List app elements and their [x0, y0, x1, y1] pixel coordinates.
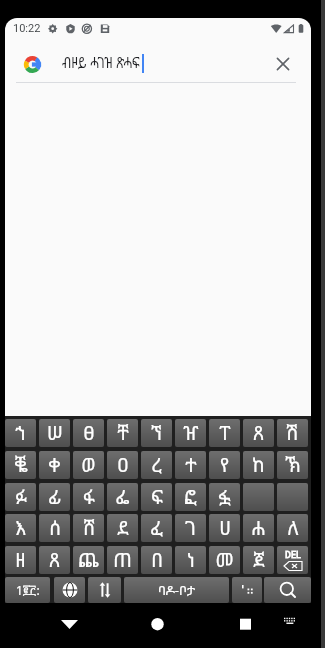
- staticText: ፌ: [115, 484, 130, 510]
- staticText: ፀ: [83, 420, 95, 446]
- button[interactable]: ጀ: [243, 546, 274, 574]
- button[interactable]: ኀ: [5, 419, 36, 447]
- staticText: ደ: [117, 515, 129, 541]
- staticText: ፈ: [150, 515, 163, 541]
- button[interactable]: ሰ: [39, 514, 70, 542]
- button[interactable]: ዘ: [5, 546, 36, 574]
- button[interactable]: ተ: [175, 451, 206, 479]
- staticText: ፍ: [151, 484, 163, 510]
- button[interactable]: ፀ: [73, 419, 104, 447]
- staticText: ቀ: [48, 452, 61, 478]
- button[interactable]: [54, 577, 85, 603]
- staticText: ፊ: [48, 484, 61, 510]
- staticText: ሽ: [286, 420, 299, 446]
- staticText: የ: [220, 452, 229, 478]
- button[interactable]: በ: [141, 546, 172, 574]
- button[interactable]: Home: [141, 608, 174, 638]
- staticText: ሐ: [251, 515, 266, 541]
- staticText: ቸ: [117, 420, 129, 446]
- staticText: ፏ: [218, 484, 231, 510]
- button[interactable]: ሐ: [243, 514, 274, 542]
- button[interactable]: [232, 577, 262, 603]
- button[interactable]: ረ: [141, 451, 172, 479]
- button[interactable]: ሀ: [209, 514, 240, 542]
- staticText: ሸ: [83, 515, 95, 541]
- button[interactable]: ቘ: [5, 451, 36, 479]
- staticText: 10:22: [13, 22, 41, 35]
- button[interactable]: ጸ: [243, 419, 274, 447]
- button[interactable]: ቀ: [39, 451, 70, 479]
- button[interactable]: ፌ: [107, 483, 138, 511]
- button[interactable]: እ: [5, 514, 36, 542]
- staticText: ሠ: [47, 420, 63, 446]
- staticText: ጸ: [49, 547, 60, 573]
- button[interactable]: ሽ: [277, 419, 308, 447]
- button[interactable]: ገ: [175, 514, 206, 542]
- button[interactable]: ፍ: [141, 483, 172, 511]
- button[interactable]: 1፪፫:: [5, 577, 50, 603]
- button[interactable]: ኽ: [277, 451, 308, 479]
- staticText: በ: [151, 547, 163, 573]
- button[interactable]: ኘ: [141, 419, 172, 447]
- button[interactable]: ለ: [277, 514, 308, 542]
- button[interactable]: [243, 483, 274, 511]
- staticText: ወ: [81, 452, 96, 478]
- button[interactable]: [264, 577, 311, 603]
- staticText: ረ: [151, 452, 162, 478]
- button[interactable]: Back: [53, 608, 86, 638]
- staticText: 1፪፫:: [16, 582, 40, 598]
- staticText: ፋ: [83, 484, 95, 510]
- button[interactable]: ሸ: [73, 514, 104, 542]
- button[interactable]: ፋ: [73, 483, 104, 511]
- staticText: ኀ: [15, 420, 26, 446]
- staticText: DEL: [285, 550, 301, 561]
- button[interactable]: ጨ: [73, 546, 104, 574]
- staticText: ብዞይ ሓገዝ ጽሓፍ: [62, 52, 140, 72]
- staticText: ፉ: [15, 484, 27, 510]
- staticText: እ: [15, 515, 26, 541]
- staticText: ኘ: [151, 420, 162, 446]
- button[interactable]: ፐ: [209, 419, 240, 447]
- staticText: ከ: [252, 452, 265, 478]
- staticText: ኽ: [285, 452, 301, 478]
- staticText: ሰ: [49, 515, 61, 541]
- button[interactable]: ቸ: [107, 419, 138, 447]
- button[interactable]: Recent apps: [229, 608, 262, 638]
- button[interactable]: ከ: [243, 451, 274, 479]
- button[interactable]: የ: [209, 451, 240, 479]
- staticText: ዘ: [15, 547, 26, 573]
- button[interactable]: [277, 483, 308, 511]
- staticText: ጨ: [78, 547, 99, 573]
- button[interactable]: ፈ: [141, 514, 172, 542]
- staticText: ባዶ-ቦታ: [158, 581, 196, 599]
- staticText: ፐ: [219, 420, 231, 446]
- button[interactable]: Clear: [269, 50, 297, 78]
- button[interactable]: ፊ: [39, 483, 70, 511]
- button[interactable]: መ: [209, 546, 240, 574]
- staticText: ፎ: [184, 484, 197, 510]
- staticText: ተ: [185, 452, 197, 478]
- button[interactable]: DEL: [277, 546, 308, 574]
- staticText: ጠ: [113, 547, 132, 573]
- button[interactable]: ፏ: [209, 483, 240, 511]
- button[interactable]: ነ: [175, 546, 206, 574]
- button[interactable]: Switch keyboard: [277, 610, 303, 634]
- button[interactable]: [88, 577, 121, 603]
- button[interactable]: ባዶ-ቦታ: [124, 577, 229, 603]
- button[interactable]: ፎ: [175, 483, 206, 511]
- button[interactable]: ዐ: [107, 451, 138, 479]
- staticText: ጀ: [253, 547, 265, 573]
- button[interactable]: ዠ: [175, 419, 206, 447]
- button[interactable]: ጸ: [39, 546, 70, 574]
- button[interactable]: ሠ: [39, 419, 70, 447]
- staticText: ዠ: [183, 420, 199, 446]
- staticText: ጸ: [253, 420, 264, 446]
- staticText: ዐ: [117, 452, 129, 478]
- button[interactable]: Google: [23, 55, 51, 83]
- button[interactable]: ፉ: [5, 483, 36, 511]
- button[interactable]: ደ: [107, 514, 138, 542]
- button[interactable]: ወ: [73, 451, 104, 479]
- staticText: ለ: [287, 515, 299, 541]
- button[interactable]: ጠ: [107, 546, 138, 574]
- staticText: ነ: [187, 547, 195, 573]
